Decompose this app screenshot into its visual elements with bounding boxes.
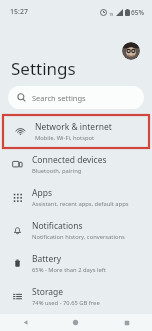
button[interactable]: Network & internet: [3, 115, 149, 148]
button[interactable]: Storage: [0, 280, 152, 313]
button[interactable]: Notifications: [0, 214, 152, 247]
staticText: Assistant, recent apps, default apps: [32, 200, 129, 208]
staticText: Notification history, conversations: [32, 233, 125, 241]
button[interactable]: Apps: [0, 181, 152, 214]
button[interactable]: Home: [50, 314, 101, 331]
button[interactable]: Search settings: [8, 86, 144, 109]
staticText: Mobile, Wi-Fi, hotspot: [35, 134, 95, 142]
staticText: Settings: [11, 57, 76, 80]
staticText: Network & internet: [35, 121, 112, 133]
staticText: Battery: [32, 253, 62, 265]
staticText: Search settings: [32, 93, 86, 103]
staticText: 65% - More than 2 days left: [32, 266, 106, 274]
staticText: 74% used - 70.65 GB free: [32, 299, 100, 307]
staticText: 15:27: [10, 7, 28, 17]
staticText: Bluetooth, pairing: [32, 167, 82, 175]
button[interactable]: Back: [0, 314, 50, 331]
staticText: Storage: [32, 286, 64, 298]
staticText: Apps: [32, 187, 52, 199]
button[interactable]: Connected devices: [0, 148, 152, 181]
staticText: Connected devices: [32, 154, 107, 166]
staticText: Notifications: [32, 220, 83, 232]
button[interactable]: Account: [122, 42, 140, 60]
staticText: ₁₉: [109, 9, 114, 17]
staticText: 65%: [131, 8, 144, 17]
button[interactable]: Battery: [0, 247, 152, 280]
button[interactable]: Recent apps: [101, 314, 152, 331]
